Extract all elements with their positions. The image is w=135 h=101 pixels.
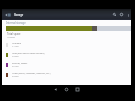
button[interactable]: Navigate up (2, 9, 14, 20)
button[interactable]: Search (111, 11, 118, 18)
staticText: Storage (14, 13, 24, 16)
staticText: 0.00GB (12, 75, 19, 78)
button[interactable]: Apps (app data & media content) (2, 50, 131, 60)
button[interactable]: Audio (music, ringtones, podcasts, etc.) (2, 70, 131, 80)
staticText: 4.93GB (12, 55, 19, 58)
staticText: 7.11GB (12, 45, 19, 48)
staticText: Pictures, videos (12, 62, 28, 65)
staticText: 0.01GB (12, 65, 19, 68)
staticText: Internal storage (6, 21, 26, 25)
staticText: Apps (app data & media content) (12, 52, 45, 55)
button[interactable]: More options (125, 12, 131, 18)
staticText: Total space (7, 32, 21, 36)
staticText: Available (12, 42, 21, 45)
staticText: Audio (music, ringtones, podcasts, etc.) (12, 72, 51, 75)
staticText: 12.55GB (7, 36, 15, 39)
button[interactable]: Available (2, 40, 131, 50)
button[interactable]: Home (61, 85, 72, 93)
button[interactable]: Pictures, videos (2, 60, 131, 70)
button[interactable]: Refresh (118, 11, 125, 18)
button[interactable]: Back (50, 85, 61, 93)
button[interactable]: Recent apps (72, 85, 83, 93)
